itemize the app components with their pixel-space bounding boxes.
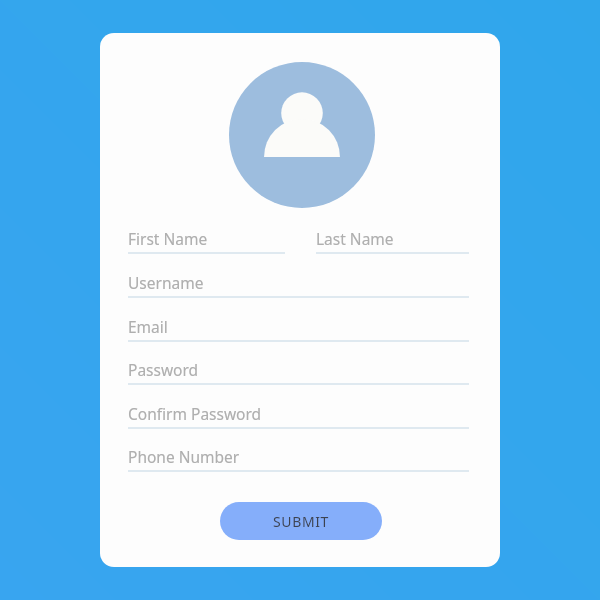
staticText: Email bbox=[128, 316, 168, 337]
staticText: Username bbox=[128, 272, 204, 293]
staticText: First Name bbox=[128, 228, 208, 249]
button[interactable]: Phone Number bbox=[128, 446, 469, 472]
button[interactable]: Email bbox=[128, 316, 469, 342]
button[interactable]: Password bbox=[128, 359, 469, 385]
staticText: Confirm Password bbox=[128, 403, 262, 424]
staticText: Password bbox=[128, 359, 199, 380]
staticText: SUBMIT bbox=[273, 512, 329, 531]
staticText: Phone Number bbox=[128, 446, 240, 467]
button[interactable]: Confirm Password bbox=[128, 403, 469, 429]
button[interactable]: Last Name bbox=[316, 228, 469, 254]
button[interactable]: First Name bbox=[128, 228, 285, 254]
button[interactable]: Profile photo bbox=[229, 62, 375, 208]
button[interactable]: SUBMIT bbox=[220, 502, 382, 540]
button[interactable]: Username bbox=[128, 272, 469, 298]
staticText: Last Name bbox=[316, 228, 394, 249]
